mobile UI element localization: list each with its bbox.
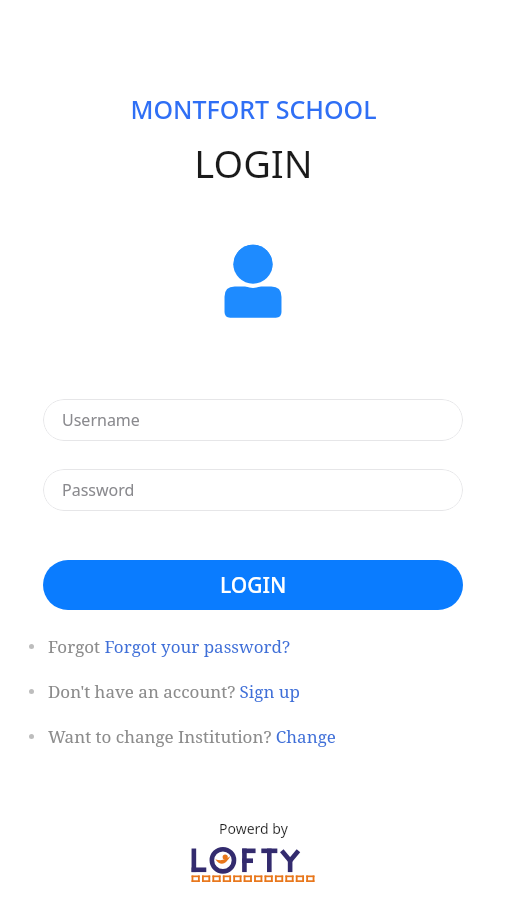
other: Lofty Technologies logo: [189, 847, 317, 885]
button[interactable]: Password: [43, 469, 463, 511]
staticText: Forgot Forgot your password?: [48, 635, 290, 658]
staticText: Don't have an account? Sign up: [48, 680, 301, 703]
button[interactable]: Forgot Forgot your password?: [0, 624, 506, 669]
other: User avatar: [221, 244, 285, 318]
button[interactable]: LOGIN: [43, 560, 463, 610]
button[interactable]: Want to change Institution? Change: [0, 714, 506, 759]
button[interactable]: Username: [43, 399, 463, 441]
staticText: LOGIN: [194, 137, 313, 189]
staticText: Want to change Institution? Change: [48, 725, 336, 748]
staticText: Password: [62, 479, 135, 501]
staticText: LOGIN: [220, 571, 287, 600]
button[interactable]: Don't have an account? Sign up: [0, 669, 506, 714]
staticText: MONTFORT SCHOOL: [130, 92, 377, 126]
staticText: Powerd by: [219, 819, 288, 838]
staticText: Username: [62, 409, 140, 431]
